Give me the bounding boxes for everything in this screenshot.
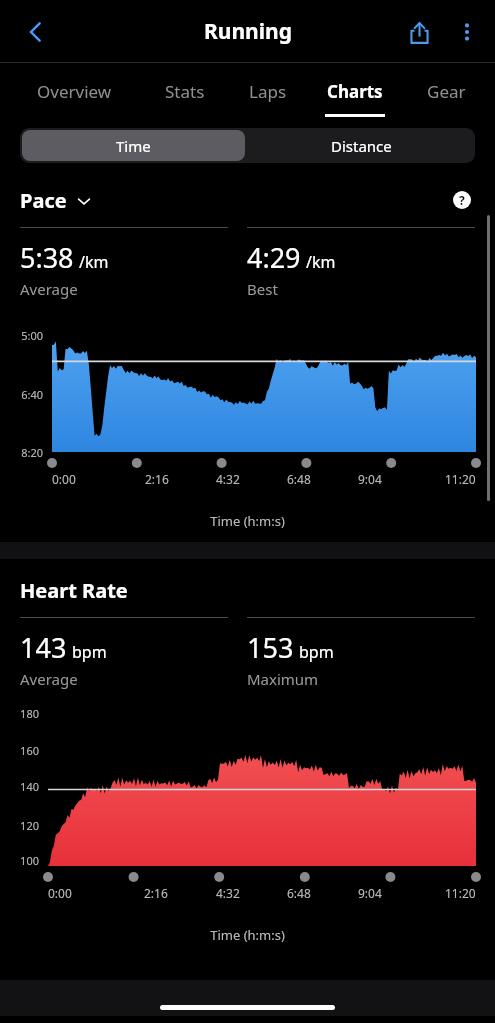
staticText: Best [247, 279, 278, 299]
staticText: 6:48 [287, 885, 311, 901]
staticText: 4:29 [247, 239, 301, 276]
staticText: 8:20 [21, 445, 43, 460]
button[interactable]: Gear [403, 63, 489, 120]
staticText: Maximum [247, 669, 319, 689]
staticText: 153 [247, 629, 294, 666]
staticText: 5:00 [21, 328, 43, 343]
staticText: Average [20, 669, 78, 689]
staticText: Average [20, 279, 78, 299]
staticText: 2:16 [145, 471, 169, 487]
button[interactable]: Charts [307, 63, 403, 120]
button[interactable]: More options [443, 8, 491, 56]
staticText: 120 [20, 818, 39, 833]
staticText: 0:00 [52, 471, 76, 487]
staticText: Pace [20, 187, 67, 214]
staticText: 5:38 [20, 239, 74, 276]
staticText: /km [306, 251, 336, 273]
staticText: 4:32 [216, 471, 240, 487]
staticText: Time (h:m:s) [0, 926, 495, 944]
staticText: 9:04 [358, 885, 382, 901]
staticText: 11:20 [445, 471, 476, 487]
button[interactable]: Share [395, 8, 443, 56]
staticText: 6:40 [21, 387, 43, 402]
staticText: 4:32 [216, 885, 240, 901]
staticText: Laps [249, 80, 287, 103]
staticText: bpm [299, 641, 334, 663]
button[interactable]: Distance [247, 128, 475, 163]
button[interactable]: Laps [228, 63, 307, 120]
staticText: Time [116, 136, 151, 156]
staticText: bpm [72, 641, 107, 663]
button[interactable]: Heart Rate [20, 577, 128, 604]
staticText: 0:00 [48, 885, 72, 901]
staticText: Overview [37, 80, 112, 103]
staticText: 140 [20, 779, 39, 794]
button[interactable]: Back [14, 10, 58, 54]
staticText: 6:48 [287, 471, 311, 487]
staticText: /km [79, 251, 109, 273]
staticText: Running [204, 17, 292, 46]
staticText: 100 [20, 853, 39, 868]
button[interactable]: Pace [20, 187, 92, 214]
staticText: Distance [331, 136, 392, 156]
button[interactable]: Stats [142, 63, 228, 120]
staticText: 2:16 [144, 885, 168, 901]
button[interactable]: Help [449, 187, 475, 213]
staticText: Stats [165, 80, 205, 103]
button[interactable]: Overview [6, 63, 142, 120]
staticText: 9:04 [358, 471, 382, 487]
staticText: 160 [20, 743, 39, 758]
staticText: 143 [20, 629, 67, 666]
staticText: Gear [427, 80, 466, 103]
staticText: 11:20 [445, 885, 476, 901]
staticText: 180 [20, 706, 39, 721]
staticText: Heart Rate [20, 577, 128, 604]
button[interactable]: Time [22, 130, 245, 161]
staticText: Time (h:m:s) [0, 512, 495, 530]
staticText: Charts [327, 80, 383, 103]
staticText: ? [459, 192, 465, 208]
